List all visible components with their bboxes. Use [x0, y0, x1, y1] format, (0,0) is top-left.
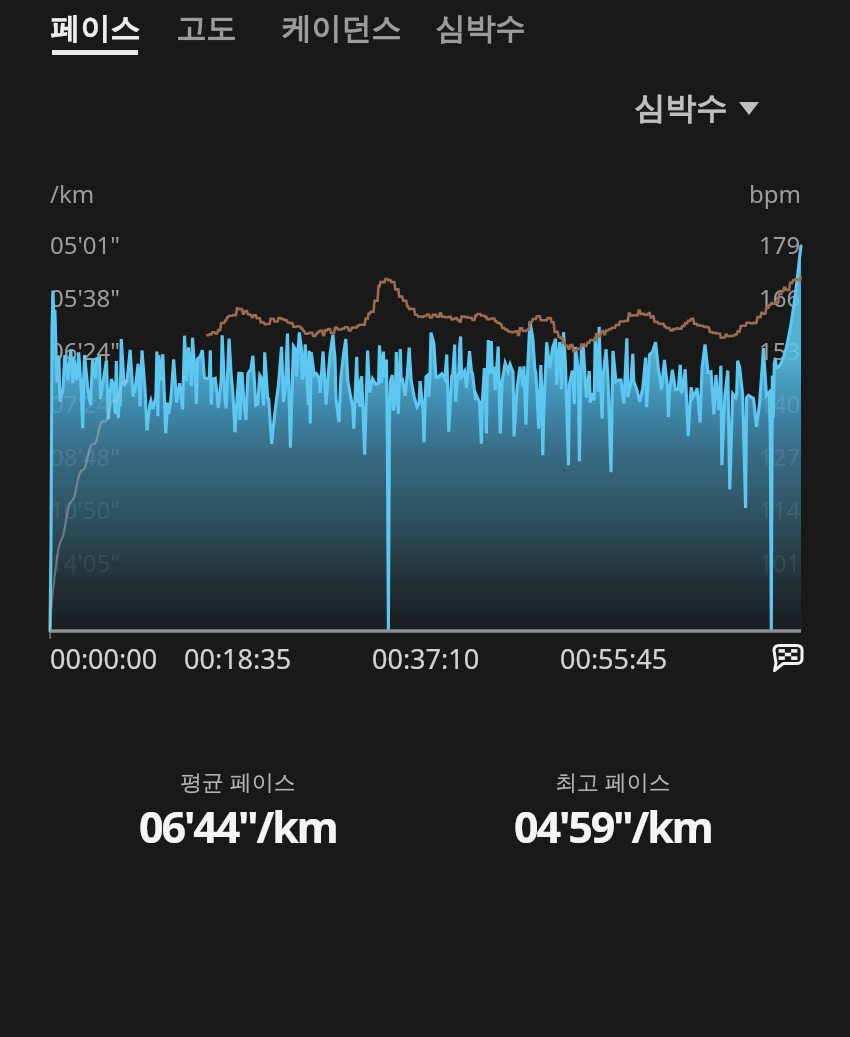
staticText: 심박수: [634, 89, 727, 128]
staticText: 심박수: [435, 10, 525, 48]
staticText: 평균 페이스: [180, 766, 296, 796]
button[interactable]: 고도: [176, 10, 236, 48]
staticText: 케이던스: [281, 10, 401, 48]
staticText: 04'59"/km: [514, 797, 712, 856]
button[interactable]: 페이스: [50, 10, 140, 55]
button[interactable]: 케이던스: [281, 10, 401, 48]
button[interactable]: 심박수: [435, 10, 525, 48]
button[interactable]: 심박수: [624, 83, 769, 134]
button[interactable]: 최고 페이스: [425, 766, 801, 856]
button[interactable]: Finish marker: [770, 640, 806, 676]
staticText: 고도: [176, 10, 236, 48]
staticText: 페이스: [50, 10, 140, 48]
staticText: 06'44"/km: [139, 797, 337, 856]
button[interactable]: 평균 페이스: [50, 766, 425, 856]
staticText: 최고 페이스: [555, 766, 671, 796]
